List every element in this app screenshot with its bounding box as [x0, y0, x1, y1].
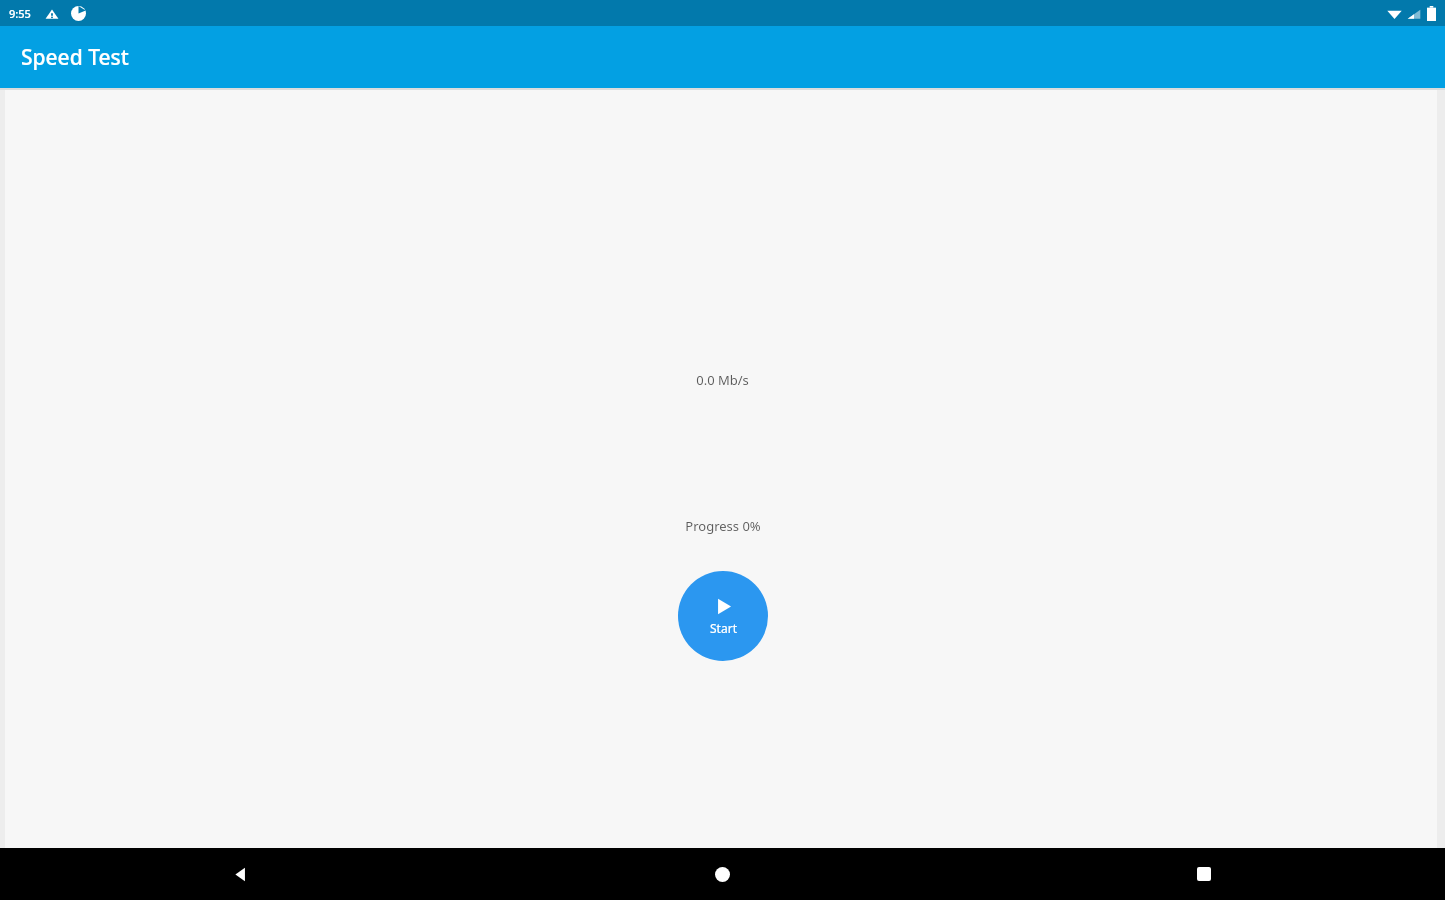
button[interactable]: Home — [481, 848, 963, 900]
staticText: 0.0 Mb/s — [696, 371, 749, 389]
staticText: Speed Test — [21, 43, 129, 72]
staticText: 9:55 — [9, 6, 31, 21]
staticText: Start — [710, 620, 737, 636]
button[interactable]: Back — [0, 848, 481, 900]
staticText: Progress 0% — [685, 517, 761, 535]
button[interactable]: Recent apps — [963, 848, 1445, 900]
button[interactable]: Start — [678, 571, 768, 661]
